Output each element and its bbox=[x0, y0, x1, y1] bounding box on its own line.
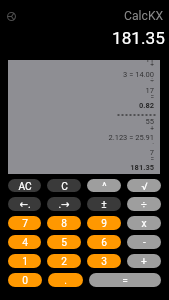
button[interactable]: 5 bbox=[47, 235, 81, 249]
staticText: CalcKX bbox=[124, 9, 164, 23]
staticText: ←. bbox=[19, 199, 31, 211]
button[interactable]: . bbox=[48, 273, 83, 287]
staticText: 2.123 = 25.91 bbox=[8, 133, 154, 142]
staticText: 3 = 14.00 bbox=[8, 70, 154, 79]
staticText: 0.82 bbox=[8, 101, 154, 110]
button[interactable]: ^ bbox=[87, 179, 121, 192]
staticText: √ bbox=[141, 181, 148, 192]
button[interactable]: ± bbox=[87, 197, 121, 211]
button[interactable]: 8 bbox=[47, 216, 81, 230]
staticText: x bbox=[141, 218, 147, 230]
button[interactable]: + bbox=[127, 254, 161, 268]
staticText: = bbox=[8, 93, 154, 101]
staticText: 181.35 bbox=[8, 163, 154, 172]
button[interactable]: ÷ bbox=[127, 197, 161, 211]
button[interactable]: √ bbox=[127, 179, 161, 192]
button[interactable]: AC bbox=[8, 179, 41, 192]
staticText: AC bbox=[18, 181, 32, 192]
staticText: = bbox=[122, 275, 128, 287]
staticText: 4 bbox=[22, 237, 28, 249]
staticText: 0 bbox=[22, 275, 28, 287]
button[interactable]: 6 bbox=[87, 235, 121, 249]
staticText: 55 bbox=[8, 117, 154, 126]
staticText: ÷ bbox=[141, 199, 147, 211]
staticText: 181.35 bbox=[112, 28, 165, 48]
button[interactable]: 7 bbox=[8, 216, 41, 230]
staticText: 8 bbox=[61, 218, 67, 230]
staticText: 9 bbox=[101, 218, 107, 230]
button[interactable]: 0 bbox=[8, 273, 42, 287]
button[interactable]: = bbox=[89, 273, 161, 287]
button[interactable]: - bbox=[127, 235, 161, 249]
button[interactable]: .→ bbox=[47, 197, 81, 211]
staticText: 6 bbox=[101, 237, 107, 249]
button[interactable]: 4 bbox=[8, 235, 41, 249]
staticText: 2 bbox=[61, 256, 67, 268]
staticText: ÷ bbox=[8, 77, 154, 85]
staticText: 17 bbox=[8, 86, 154, 95]
button[interactable]: C bbox=[47, 179, 81, 192]
staticText: + bbox=[141, 256, 147, 268]
staticText: ^ bbox=[102, 181, 107, 192]
staticText: 7 bbox=[8, 148, 154, 157]
button[interactable]: 9 bbox=[87, 216, 121, 230]
staticText: + bbox=[8, 125, 154, 133]
staticText: 3 bbox=[101, 256, 107, 268]
staticText: + bbox=[8, 61, 154, 69]
other: Status bbox=[7, 12, 16, 21]
staticText: 5 bbox=[61, 237, 67, 249]
button[interactable]: 3 bbox=[87, 254, 121, 268]
staticText: .→ bbox=[58, 199, 70, 211]
button[interactable]: 1 bbox=[8, 254, 41, 268]
staticText: 7 bbox=[22, 218, 28, 230]
staticText: = bbox=[8, 155, 154, 163]
staticText: 1 bbox=[22, 256, 28, 268]
button[interactable]: ←. bbox=[8, 197, 41, 211]
staticText: C bbox=[61, 181, 68, 192]
staticText: . bbox=[64, 275, 67, 287]
staticText: 11 bbox=[8, 60, 154, 64]
staticText: - bbox=[143, 237, 146, 249]
button[interactable]: x bbox=[127, 216, 161, 230]
staticText: ± bbox=[101, 199, 107, 211]
button[interactable]: 2 bbox=[47, 254, 81, 268]
